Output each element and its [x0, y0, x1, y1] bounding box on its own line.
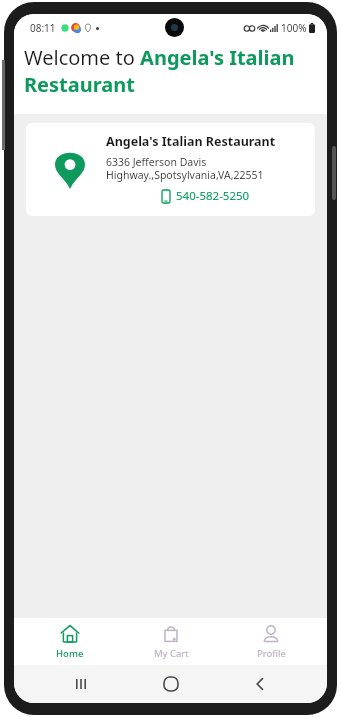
button[interactable]: Back: [238, 665, 282, 703]
button[interactable]: Profile: [226, 618, 316, 665]
staticText: 540-582-5250: [176, 188, 250, 204]
staticText: 6336 Jefferson Davis Highway.,Spotsylvan…: [106, 155, 264, 182]
staticText: Welcome to Angela's Italian Restaurant: [24, 44, 317, 98]
other: My Cart: [161, 624, 181, 644]
button[interactable]: Recents: [59, 665, 103, 703]
staticText: Profile: [257, 647, 286, 660]
staticText: 08:11: [30, 21, 56, 35]
button[interactable]: 540-582-5250: [162, 188, 250, 204]
button[interactable]: Home: [25, 618, 115, 665]
staticText: Home: [56, 647, 84, 660]
other: Location: [55, 149, 85, 189]
other: Home: [60, 624, 80, 644]
button[interactable]: Location: [26, 123, 315, 216]
button[interactable]: My Cart: [126, 618, 216, 665]
staticText: 100%: [281, 21, 307, 35]
staticText: My Cart: [154, 647, 189, 660]
other: Profile: [261, 624, 281, 644]
staticText: Angela's Italian Restaurant: [106, 133, 276, 150]
button[interactable]: Home: [149, 665, 193, 703]
